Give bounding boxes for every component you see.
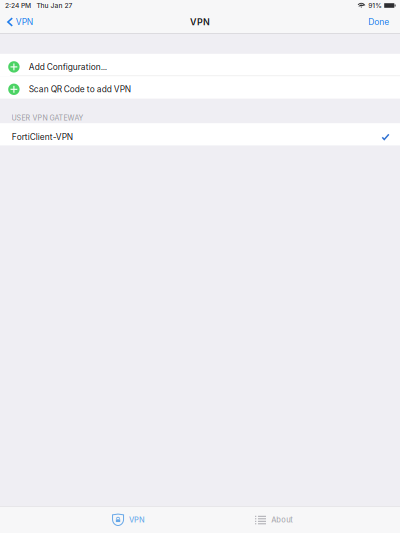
staticText: Scan QR Code to add VPN xyxy=(29,84,131,94)
button[interactable]: Add Configuration... xyxy=(0,54,400,76)
button[interactable]: About xyxy=(200,507,400,533)
button[interactable]: Done xyxy=(360,11,400,33)
button[interactable]: VPN xyxy=(0,507,200,533)
button[interactable]: Scan QR Code to add VPN xyxy=(0,76,400,99)
button[interactable]: FortiClient-VPN xyxy=(0,123,400,145)
button[interactable]: VPN xyxy=(0,11,40,33)
staticText: Add Configuration... xyxy=(29,62,107,72)
staticText: USER VPN GATEWAY xyxy=(12,114,84,122)
staticText: 91% xyxy=(368,1,382,10)
staticText: 2:24 PM xyxy=(5,1,31,10)
staticText: VPN xyxy=(16,17,33,27)
staticText: FortiClient-VPN xyxy=(12,132,73,142)
staticText: Done xyxy=(368,17,389,27)
staticText: About xyxy=(271,515,293,524)
staticText: VPN xyxy=(129,515,145,524)
staticText: Thu Jan 27 xyxy=(36,1,72,10)
staticText: VPN xyxy=(190,17,210,27)
